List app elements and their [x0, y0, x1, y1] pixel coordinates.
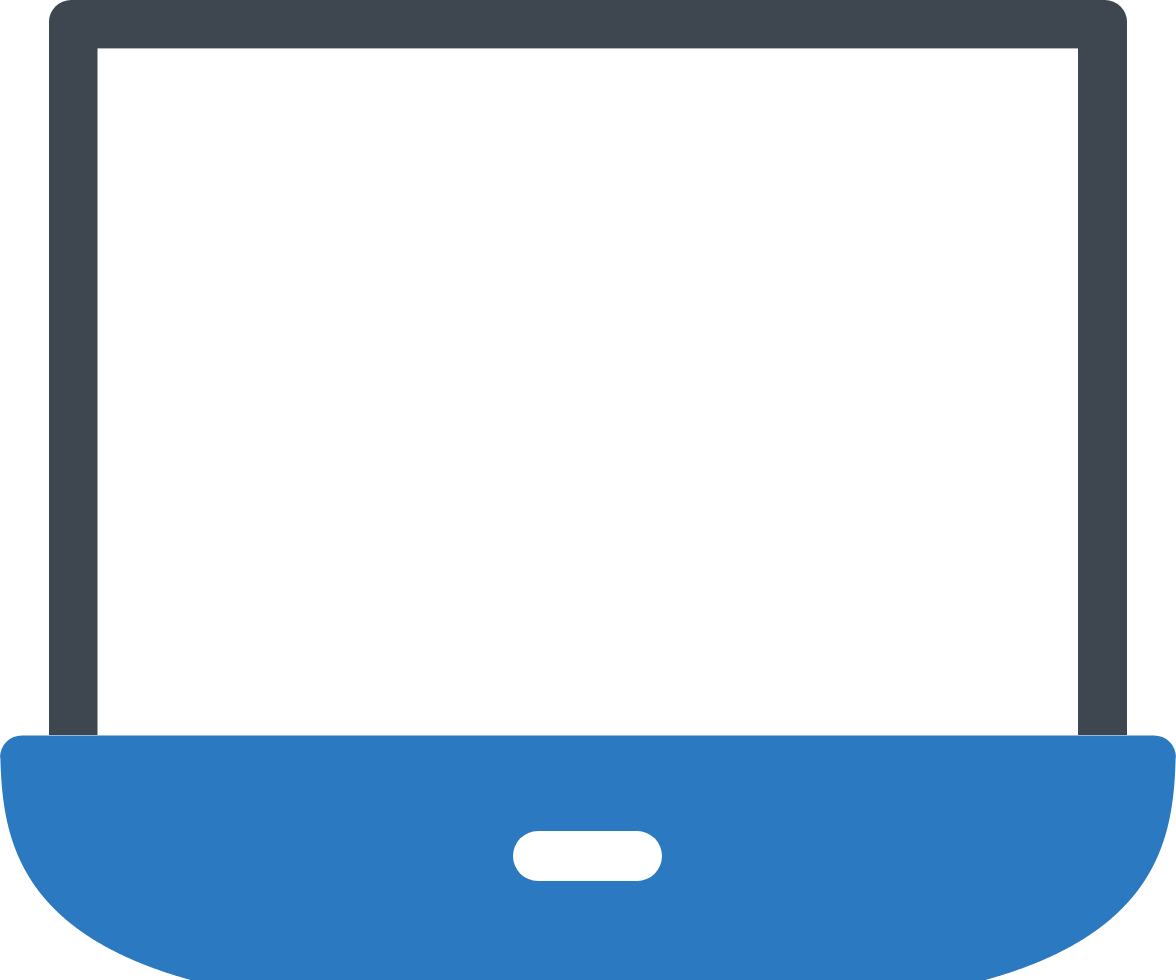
button[interactable]: Laptop computer illustration [0, 0, 1176, 980]
